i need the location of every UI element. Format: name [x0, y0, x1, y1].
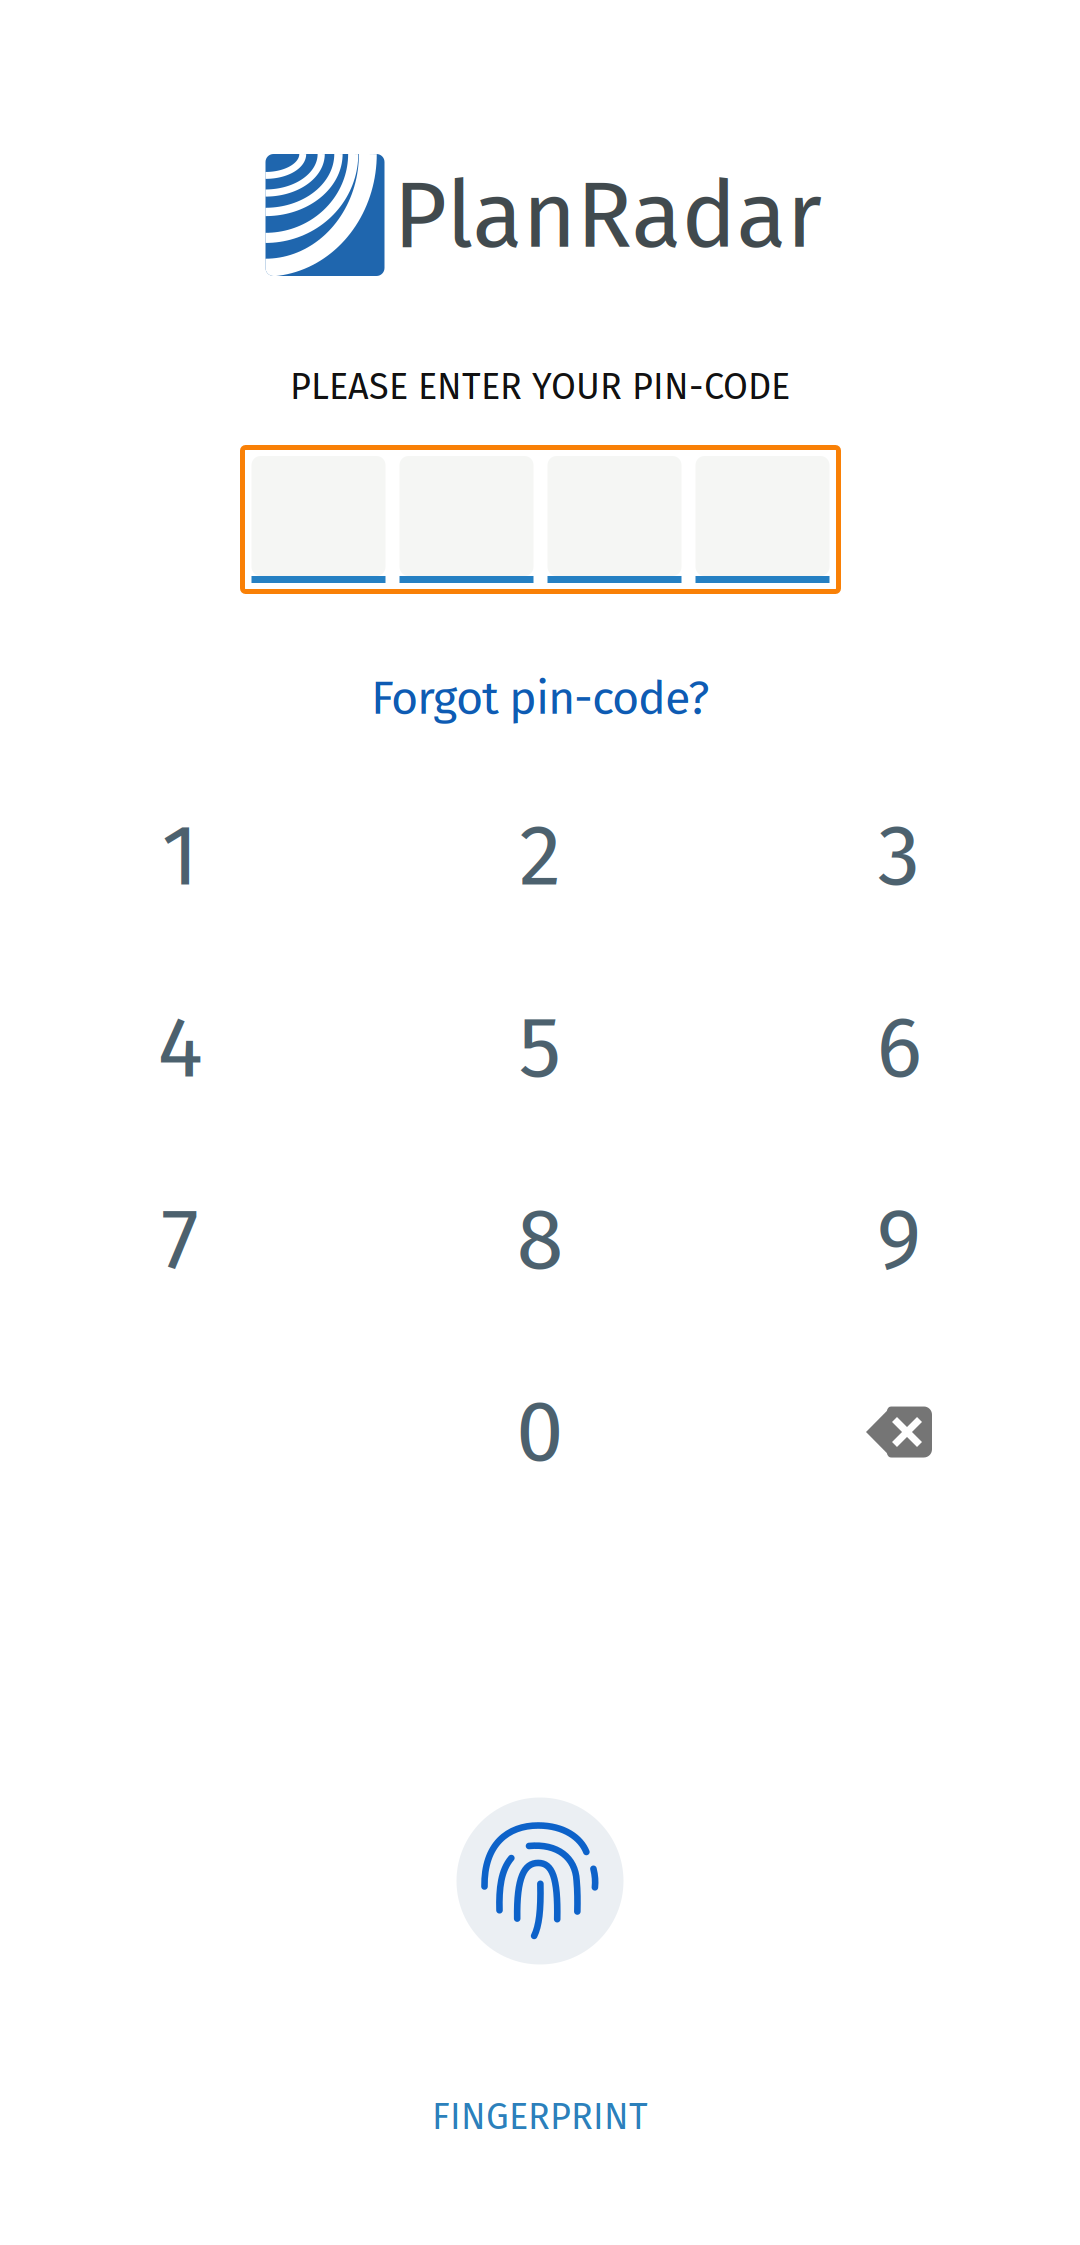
button[interactable]: 5 — [420, 960, 660, 1136]
button[interactable]: 0 — [420, 1344, 660, 1520]
staticText: FINGERPRINT — [432, 2095, 648, 2139]
button[interactable]: 1 — [60, 768, 300, 944]
staticText: Forgot pin-code? — [371, 670, 709, 726]
staticText: PLEASE ENTER YOUR PIN-CODE — [290, 365, 790, 409]
staticText: 7 — [161, 1189, 199, 1291]
button[interactable]: 3 — [779, 768, 1019, 944]
button[interactable]: 8 — [420, 1152, 660, 1328]
staticText: 8 — [516, 1189, 563, 1291]
staticText: 9 — [876, 1189, 921, 1291]
button[interactable]: Delete — [779, 1344, 1019, 1520]
button[interactable]: Fingerprint — [456, 1797, 623, 1964]
button[interactable]: 9 — [779, 1152, 1019, 1328]
button[interactable]: 7 — [60, 1152, 300, 1328]
staticText: 3 — [877, 805, 920, 907]
button[interactable]: FINGERPRINT — [370, 2077, 710, 2157]
staticText: 2 — [519, 805, 561, 907]
button[interactable]: 2 — [420, 768, 660, 944]
staticText: PlanRadar — [393, 161, 822, 271]
staticText: 4 — [157, 997, 202, 1099]
staticText: 5 — [518, 997, 561, 1099]
staticText: 0 — [516, 1381, 564, 1483]
staticText: 6 — [876, 997, 921, 1099]
staticText: 1 — [161, 805, 198, 907]
button[interactable]: Forgot pin-code? — [280, 653, 800, 743]
button[interactable]: 6 — [779, 960, 1019, 1136]
button[interactable]: 4 — [60, 960, 300, 1136]
